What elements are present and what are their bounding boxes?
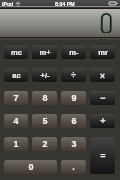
staticText: 0 xyxy=(28,162,34,172)
button[interactable]: 3 xyxy=(61,137,86,151)
button[interactable]: 8 xyxy=(32,91,57,105)
button[interactable]: 2 xyxy=(32,137,57,151)
button[interactable]: . xyxy=(61,160,86,174)
button[interactable]: ac xyxy=(4,68,28,82)
staticText: 9 xyxy=(71,93,77,103)
staticText: × xyxy=(100,71,105,80)
staticText: 0 xyxy=(99,5,114,33)
staticText: +/- xyxy=(40,71,50,79)
staticText: m- xyxy=(69,48,79,56)
staticText: iPod xyxy=(2,1,14,7)
staticText: m+ xyxy=(39,48,51,56)
button[interactable]: 0 xyxy=(4,160,57,174)
staticText: 3 xyxy=(71,139,77,149)
button[interactable]: m+ xyxy=(32,45,57,59)
button[interactable]: 9 xyxy=(61,91,86,105)
button[interactable]: +/- xyxy=(32,68,57,82)
staticText: 7 xyxy=(13,93,19,103)
button[interactable]: m- xyxy=(61,45,86,59)
button[interactable]: 7 xyxy=(4,91,28,105)
button[interactable]: 1 xyxy=(4,137,28,151)
staticText: 8:34 PM xyxy=(55,1,75,7)
staticText: 6 xyxy=(71,116,77,126)
staticText: 4 xyxy=(13,116,19,126)
staticText: = xyxy=(100,151,106,161)
button[interactable]: − xyxy=(90,91,115,105)
staticText: − xyxy=(100,93,106,103)
staticText: ac xyxy=(12,71,21,79)
staticText: + xyxy=(100,116,106,126)
staticText: 5 xyxy=(42,116,48,126)
button[interactable]: ÷ xyxy=(61,68,86,82)
staticText: mr xyxy=(98,48,108,56)
staticText: 1 xyxy=(13,139,19,149)
button[interactable]: 4 xyxy=(4,114,28,128)
staticText: mc xyxy=(11,48,22,56)
button[interactable]: 5 xyxy=(32,114,57,128)
staticText: . xyxy=(72,162,75,172)
button[interactable]: = xyxy=(90,137,115,174)
button[interactable]: mr xyxy=(90,45,115,59)
button[interactable]: × xyxy=(90,68,115,82)
button[interactable]: + xyxy=(90,114,115,128)
staticText: 2 xyxy=(42,139,48,149)
button[interactable]: mc xyxy=(4,45,28,59)
button[interactable]: 6 xyxy=(61,114,86,128)
staticText: 8 xyxy=(42,93,48,103)
staticText: ÷ xyxy=(71,70,76,80)
